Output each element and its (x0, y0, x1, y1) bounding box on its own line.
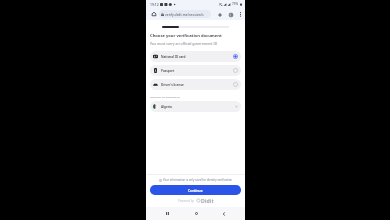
button[interactable]: Back (217, 207, 231, 220)
staticText: Passport (161, 69, 175, 73)
staticText: You must carry an official government ID (150, 41, 218, 46)
staticText: verify.didit.me/session/s (165, 12, 204, 17)
button[interactable]: Passport (150, 65, 241, 76)
button[interactable]: National ID card (150, 51, 241, 62)
button[interactable]: Home (149, 9, 159, 19)
button[interactable]: Home (189, 207, 203, 220)
button[interactable]: Open tabs (226, 10, 235, 19)
button[interactable]: verify.didit.me/session/s (159, 10, 211, 18)
staticText: Continue (188, 188, 203, 192)
button[interactable]: New tab (215, 10, 224, 19)
staticText: Choose your verification document (150, 33, 222, 39)
button[interactable]: Continue (150, 185, 241, 195)
staticText: COUNTRY OF DOCUMENT (150, 96, 180, 99)
staticText: Powered by (178, 199, 194, 203)
staticText: Driver's license (161, 83, 184, 87)
staticText: Didit (201, 197, 214, 204)
staticText: Your information is only used for identi… (163, 178, 233, 182)
staticText: Algeria (161, 105, 172, 109)
button[interactable]: Algeria (150, 101, 241, 112)
button[interactable]: More options (237, 11, 244, 18)
staticText: 19:12 (150, 2, 159, 7)
staticText: National ID card (161, 55, 186, 59)
button[interactable]: Recent apps (160, 207, 174, 220)
button[interactable]: Driver's license (150, 79, 241, 90)
staticText: 73% (232, 2, 239, 6)
